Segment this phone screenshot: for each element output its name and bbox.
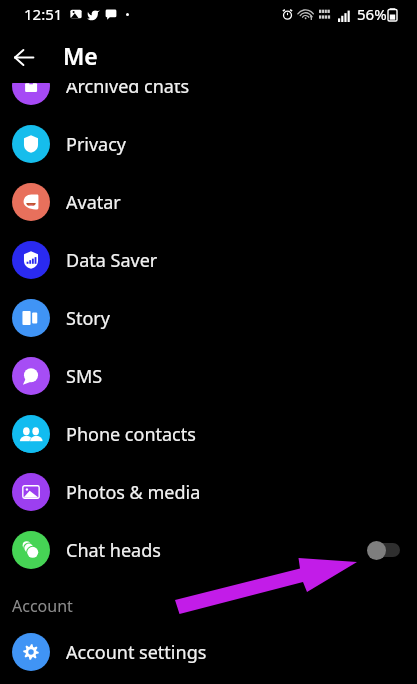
button[interactable]: Phone contacts [0,405,417,463]
button[interactable]: Chat heads toggle [358,537,400,563]
staticText: SMS [66,364,417,389]
staticText: 12:51 [24,4,63,24]
button[interactable]: Chat heads [0,521,417,579]
button[interactable]: Story [0,289,417,347]
staticText: Avatar [66,190,417,215]
staticText: Chat heads [66,538,358,563]
button[interactable]: Data Saver [0,231,417,289]
staticText: Data Saver [66,248,417,273]
staticText: Me [63,40,98,71]
button[interactable]: Archived chats [0,83,417,115]
button[interactable]: Avatar [0,173,417,231]
staticText: Account settings [66,640,417,665]
staticText: 56% [357,4,387,24]
staticText: Archived chats [66,83,417,99]
button[interactable]: Photos & media [0,463,417,521]
button[interactable]: SMS [0,347,417,405]
button[interactable]: Back [4,37,44,77]
staticText: Privacy [66,132,417,157]
staticText: Photos & media [66,480,417,505]
staticText: Account [12,595,73,617]
staticText: Story [66,306,417,331]
staticText: Phone contacts [66,422,417,447]
button[interactable]: Account settings [0,623,417,681]
button[interactable]: Privacy [0,115,417,173]
